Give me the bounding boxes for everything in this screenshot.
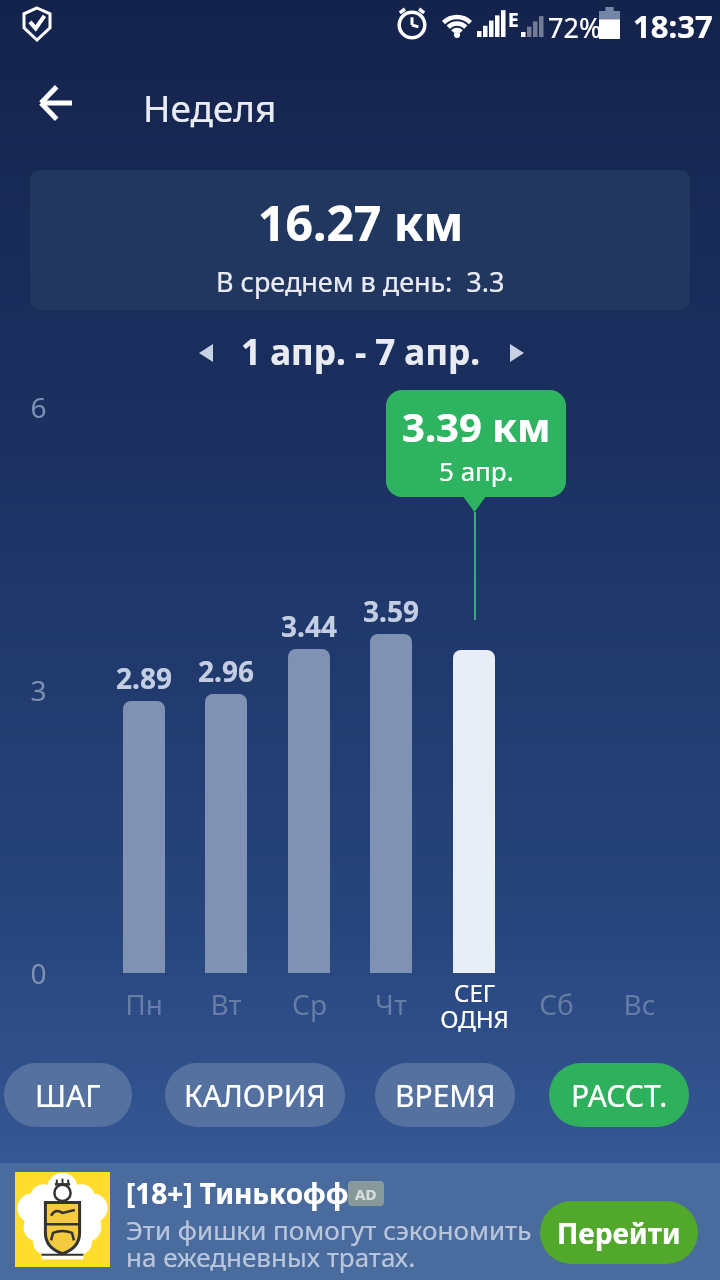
staticText: [18+] Тинькофф (126, 1174, 349, 1212)
button[interactable]: ВРЕМЯ (375, 1063, 515, 1127)
staticText: ШАГ (35, 1075, 101, 1116)
button[interactable] (190, 337, 222, 369)
staticText: 3 (30, 671, 47, 709)
button[interactable] (0, 1163, 720, 1280)
button[interactable]: КАЛОРИЯ (165, 1063, 345, 1127)
staticText: E (508, 7, 519, 33)
staticText: 72% (548, 9, 602, 46)
staticText: Ср (292, 985, 327, 1023)
staticText: В среднем в день: 3.3 (216, 263, 505, 300)
button[interactable]: Перейти (540, 1201, 698, 1264)
staticText: Сб (539, 985, 574, 1023)
staticText: 5 апр. (439, 453, 514, 488)
staticText: Чт (375, 985, 407, 1023)
staticText: 6 (30, 388, 47, 426)
staticText: 2.96 (198, 652, 254, 690)
button[interactable]: ШАГ (4, 1063, 132, 1127)
staticText: 2.89 (116, 659, 172, 697)
staticText: КАЛОРИЯ (184, 1075, 326, 1116)
staticText: 1 апр. - 7 апр. (241, 328, 480, 376)
button[interactable]: 16.27 км (30, 170, 690, 310)
staticText: РАССТ. (571, 1075, 668, 1116)
staticText: Вс (623, 985, 656, 1023)
staticText: ОДНЯ (440, 1002, 509, 1035)
staticText: Эти фишки помогут сэкономить (126, 1212, 532, 1247)
staticText: 3.59 (363, 592, 419, 630)
button[interactable]: РАССТ. (549, 1063, 689, 1127)
staticText: 3.39 км (402, 399, 551, 453)
staticText: 0 (30, 954, 47, 992)
staticText: 18:37 (633, 5, 713, 47)
staticText: 3.44 (281, 607, 337, 645)
button[interactable] (501, 337, 533, 369)
staticText: Пн (125, 985, 163, 1023)
staticText: СЕГ (454, 976, 495, 1009)
button[interactable] (30, 77, 82, 129)
staticText: Перейти (557, 1214, 681, 1252)
staticText: Неделя (143, 82, 277, 132)
staticText: AD (355, 1184, 377, 1204)
staticText: 16.27 км (258, 190, 464, 255)
staticText: на ежедневных тратах. (126, 1239, 416, 1274)
staticText: Вт (210, 985, 242, 1023)
staticText: ВРЕМЯ (395, 1075, 496, 1116)
